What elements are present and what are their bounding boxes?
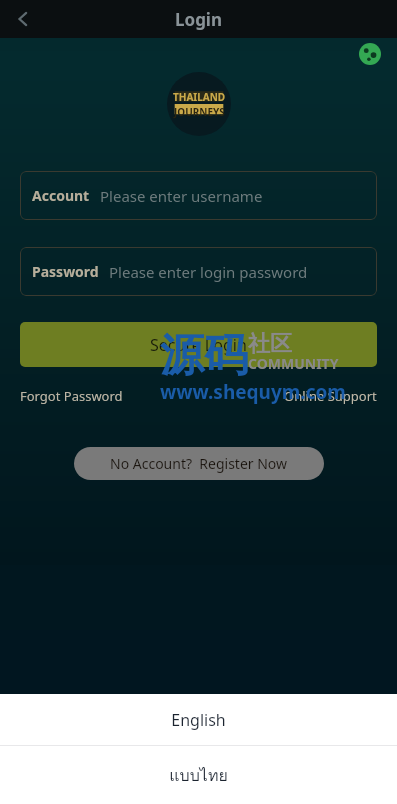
staticText: English [171, 709, 226, 731]
staticText: แบบไทย [169, 763, 228, 788]
button[interactable]: แบบไทย [0, 746, 397, 804]
staticText: Please enter username [100, 186, 263, 206]
button[interactable]: English [0, 694, 397, 745]
button[interactable]: Account [20, 171, 377, 220]
staticText: THAILAND [173, 90, 226, 104]
staticText: Password [32, 262, 99, 281]
staticText: www.shequym.com [160, 379, 346, 405]
button[interactable]: Forgot Password [20, 383, 123, 409]
staticText: Secure Login [150, 334, 247, 356]
button[interactable]: No Account? Register Now [74, 447, 324, 480]
button[interactable]: Language [357, 41, 383, 67]
staticText: JOURNEYS [174, 105, 225, 119]
staticText: COMMUNITY [248, 354, 339, 373]
staticText: 源码 [160, 328, 248, 383]
staticText: Forgot Password [20, 387, 123, 405]
staticText: Online Support [284, 387, 377, 405]
staticText: 社区 [248, 330, 292, 358]
button[interactable]: Online Support [284, 383, 377, 409]
staticText: Account [32, 186, 90, 205]
staticText: Please enter login password [109, 262, 308, 282]
button[interactable]: Secure Login [20, 322, 377, 367]
button[interactable]: Back [6, 2, 40, 36]
staticText: Login [175, 8, 223, 31]
staticText: No Account? Register Now [110, 454, 288, 473]
button[interactable]: Password [20, 247, 377, 296]
